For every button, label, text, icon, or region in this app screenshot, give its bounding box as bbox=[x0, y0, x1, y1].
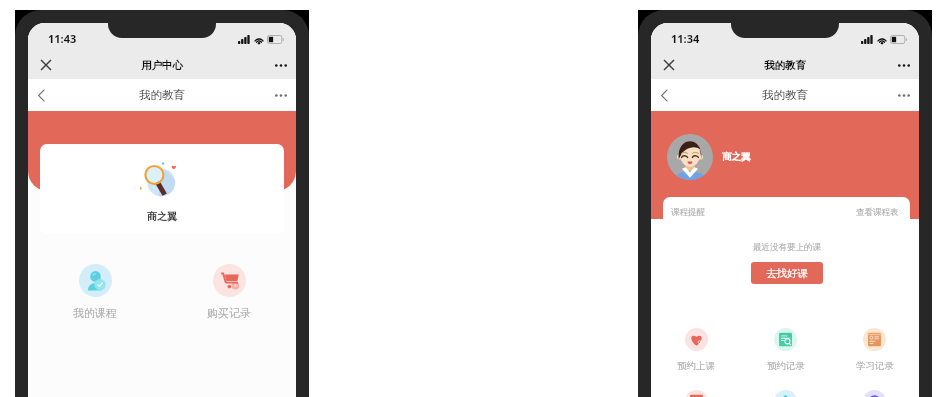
staticText: 预约记录 bbox=[767, 360, 805, 372]
staticText: 我的教育 bbox=[762, 88, 808, 102]
button[interactable] bbox=[830, 390, 919, 397]
button[interactable]: 查看课程表 bbox=[856, 207, 899, 218]
button[interactable]: More bbox=[265, 51, 296, 79]
button[interactable]: Back bbox=[28, 79, 55, 111]
staticText: 预约上课 bbox=[677, 360, 715, 372]
button[interactable]: Close bbox=[28, 51, 64, 79]
staticText: 最近没有要上的课 bbox=[753, 242, 821, 253]
staticText: 商之翼 bbox=[722, 151, 751, 163]
staticText: 我的教育 bbox=[764, 59, 806, 72]
staticText: 我的课程 bbox=[73, 306, 117, 320]
staticText: 我的教育 bbox=[139, 88, 185, 102]
button[interactable]: 购买记录 bbox=[162, 264, 296, 320]
staticText: 11:43 bbox=[48, 31, 77, 46]
button[interactable]: More options bbox=[888, 79, 919, 111]
staticText: 课程提醒 bbox=[671, 207, 705, 218]
button[interactable]: 去找好课 bbox=[751, 262, 823, 284]
staticText: 11:34 bbox=[671, 31, 700, 46]
button[interactable]: Close bbox=[651, 51, 687, 79]
staticText: 购买记录 bbox=[207, 306, 251, 320]
staticText: 用户中心 bbox=[141, 59, 183, 72]
button[interactable]: Back bbox=[651, 79, 678, 111]
button[interactable]: 学习记录 bbox=[830, 328, 919, 372]
button[interactable]: More bbox=[888, 51, 919, 79]
button[interactable]: 预约上课 bbox=[651, 328, 741, 372]
staticText: 商之翼 bbox=[147, 210, 177, 223]
button[interactable]: 预约记录 bbox=[741, 328, 830, 372]
button[interactable]: More options bbox=[265, 79, 296, 111]
button[interactable]: 商之翼 bbox=[40, 144, 284, 234]
button[interactable]: 我的课程 bbox=[28, 264, 162, 320]
staticText: 学习记录 bbox=[856, 360, 894, 372]
button[interactable] bbox=[741, 390, 830, 397]
button[interactable] bbox=[651, 390, 741, 397]
staticText: 去找好课 bbox=[766, 267, 808, 280]
